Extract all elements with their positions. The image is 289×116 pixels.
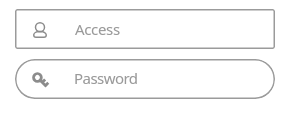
other: Password [32,72,49,89]
other: Account [33,22,47,38]
staticText: Password [74,68,138,88]
button[interactable]: Password [15,59,275,99]
button[interactable]: Account [15,9,275,49]
staticText: Access [75,19,120,39]
